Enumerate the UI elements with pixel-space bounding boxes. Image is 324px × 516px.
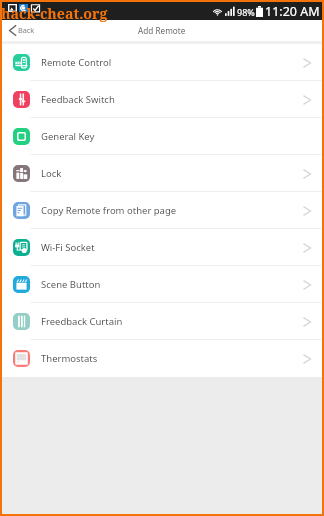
staticText: Thermostats bbox=[41, 352, 98, 365]
button[interactable]: Back bbox=[2, 20, 43, 38]
button[interactable]: Freedback Curtain bbox=[2, 303, 322, 340]
staticText: Lock bbox=[41, 167, 62, 180]
staticText: Back bbox=[18, 25, 35, 35]
staticText: hack-cheat.org bbox=[1, 4, 108, 23]
staticText: Copy Remote from other page bbox=[41, 204, 177, 217]
button[interactable]: General Key bbox=[2, 118, 322, 155]
button[interactable]: Lock bbox=[2, 155, 322, 192]
button[interactable]: Wi-Fi Socket bbox=[2, 229, 322, 266]
staticText: Feedback Switch bbox=[41, 93, 115, 106]
staticText: General Key bbox=[41, 130, 95, 143]
staticText: Scene Button bbox=[41, 278, 101, 291]
staticText: Remote Control bbox=[41, 56, 112, 69]
button[interactable]: Remote Control bbox=[2, 44, 322, 81]
button[interactable]: Copy Remote from other page bbox=[2, 192, 322, 229]
button[interactable]: Thermostats bbox=[2, 340, 322, 377]
staticText: Wi-Fi Socket bbox=[41, 241, 95, 254]
staticText: 11:20 AM bbox=[265, 3, 320, 20]
staticText: Add Remote bbox=[138, 25, 186, 36]
button[interactable]: Feedback Switch bbox=[2, 81, 322, 118]
button[interactable]: Scene Button bbox=[2, 266, 322, 303]
staticText: Freedback Curtain bbox=[41, 315, 123, 328]
staticText: 98% bbox=[237, 6, 255, 18]
